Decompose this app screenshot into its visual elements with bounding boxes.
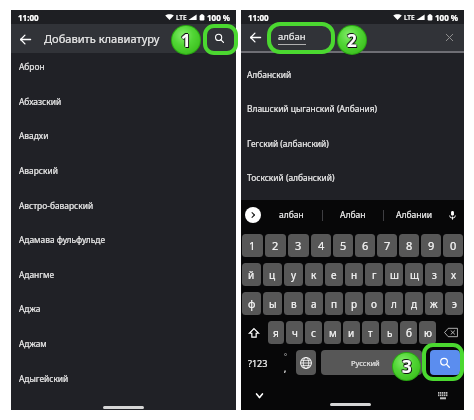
button[interactable]: Expand suggestions <box>245 207 261 223</box>
button[interactable]: ш <box>385 263 403 286</box>
button[interactable]: п <box>325 292 343 315</box>
button[interactable]: г <box>365 263 383 286</box>
staticText: 1 <box>180 28 190 51</box>
button[interactable]: Гегский (албанский) <box>241 126 464 161</box>
button[interactable]: Clear <box>434 24 464 51</box>
button[interactable]: а <box>305 292 323 315</box>
button[interactable]: Search <box>203 24 236 53</box>
staticText: у <box>291 268 297 282</box>
staticText: Австро-баварский <box>19 200 94 211</box>
staticText: й <box>248 268 255 282</box>
staticText: 8 <box>406 238 413 253</box>
button[interactable]: е <box>325 263 343 286</box>
button[interactable]: 8 <box>399 234 419 257</box>
button[interactable]: Русский <box>321 350 422 375</box>
button[interactable]: ь <box>381 321 398 344</box>
button[interactable]: Back <box>11 25 39 53</box>
button[interactable]: х <box>445 263 463 286</box>
button[interactable]: Австро-баварский <box>11 188 236 223</box>
button[interactable]: Change language <box>296 350 316 375</box>
button[interactable]: я <box>268 321 284 344</box>
staticText: Абхазский <box>19 96 62 107</box>
button[interactable]: о <box>365 292 383 315</box>
button[interactable]: д <box>405 292 423 315</box>
staticText: е <box>331 268 337 282</box>
staticText: г <box>372 268 377 282</box>
button[interactable]: 1 <box>242 234 263 257</box>
staticText: албан <box>279 209 304 221</box>
button[interactable]: Тоскский (албанский) <box>241 160 464 195</box>
staticText: 7 <box>384 238 391 253</box>
button[interactable]: Албан <box>323 200 383 230</box>
button[interactable]: Аджа <box>11 291 236 326</box>
button[interactable]: Аджам <box>11 326 236 361</box>
staticText: ы <box>269 297 277 311</box>
staticText: 1 <box>181 30 191 53</box>
button[interactable]: Албанский <box>241 57 464 92</box>
button[interactable]: м <box>324 321 341 344</box>
button[interactable]: Аварский <box>11 153 236 188</box>
button[interactable]: Авадхи <box>11 118 236 153</box>
button[interactable]: р <box>345 292 363 315</box>
button[interactable]: Адангме <box>11 257 236 292</box>
button[interactable]: с <box>305 321 322 344</box>
button[interactable]: л <box>385 292 403 315</box>
staticText: т <box>368 326 373 340</box>
button[interactable]: 0 <box>443 234 463 257</box>
staticText: ь <box>387 326 393 340</box>
button[interactable]: ы <box>263 292 282 315</box>
staticText: в <box>291 297 297 311</box>
button[interactable]: 6 <box>355 234 375 257</box>
button[interactable]: и <box>343 321 360 344</box>
staticText: ж <box>430 297 438 311</box>
button[interactable]: Албании <box>384 200 444 230</box>
staticText: 3 <box>401 355 411 378</box>
staticText: 2 <box>346 28 356 51</box>
button[interactable]: ю <box>419 321 436 344</box>
button[interactable]: Адамава фульфульде <box>11 222 236 257</box>
button[interactable]: й <box>242 263 261 286</box>
button[interactable]: Voice input <box>444 207 460 223</box>
staticText: ц <box>269 268 276 282</box>
button[interactable]: Shift <box>242 321 266 344</box>
button[interactable]: Адыгейский <box>11 361 236 396</box>
button[interactable]: 5 <box>333 234 353 257</box>
button[interactable]: у <box>284 263 303 286</box>
button[interactable]: 9 <box>421 234 441 257</box>
staticText: 1 <box>182 29 192 52</box>
staticText: ю <box>424 326 432 340</box>
button[interactable]: Влашский цыганский (Албания) <box>241 91 464 126</box>
button[interactable]: 4 <box>311 234 331 257</box>
button[interactable]: э <box>445 292 463 315</box>
staticText: албан <box>278 30 306 43</box>
button[interactable]: ?123 <box>242 350 273 375</box>
button[interactable]: Search <box>430 350 460 375</box>
button[interactable]: в <box>284 292 303 315</box>
button[interactable]: ч <box>286 321 303 344</box>
button[interactable]: ж <box>425 292 443 315</box>
button[interactable]: т <box>362 321 379 344</box>
staticText: 3 <box>401 354 411 377</box>
button[interactable]: к <box>305 263 323 286</box>
button[interactable]: Hide keyboard <box>252 388 266 402</box>
button[interactable]: Back <box>241 24 269 51</box>
staticText: д <box>411 297 418 311</box>
button[interactable]: Keyboard settings <box>434 387 452 405</box>
button[interactable]: щ <box>405 263 423 286</box>
button[interactable]: 7 <box>377 234 397 257</box>
staticText: 2 <box>347 30 357 53</box>
staticText: Влашский цыганский (Албания) <box>247 103 378 114</box>
button[interactable]: Backspace <box>438 321 463 344</box>
button[interactable]: б <box>400 321 417 344</box>
button[interactable]: Аброн <box>11 49 236 84</box>
button[interactable]: ф <box>242 292 261 315</box>
button[interactable]: ц <box>263 263 282 286</box>
button[interactable]: Абхазский <box>11 84 236 119</box>
staticText: 9 <box>428 238 435 253</box>
button[interactable]: 3 <box>288 234 309 257</box>
button[interactable]: албан <box>261 200 322 230</box>
button[interactable]: 2 <box>265 234 286 257</box>
button[interactable]: ° <box>274 350 296 375</box>
button[interactable]: н <box>345 263 363 286</box>
button[interactable]: з <box>425 263 443 286</box>
